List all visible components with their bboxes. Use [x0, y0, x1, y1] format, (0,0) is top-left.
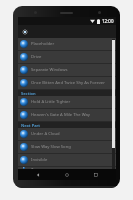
button[interactable]: Hold A Little Tighter [18, 96, 116, 108]
button[interactable]: Under A Cloud [18, 128, 116, 140]
button[interactable]: Home [58, 169, 76, 180]
staticText: Once Bitten And Twice Shy As Forever [31, 80, 105, 86]
staticText: Under A Cloud [31, 131, 60, 137]
button[interactable]: Once Bitten And Twice Shy As Forever [18, 77, 116, 89]
button[interactable]: Drive [18, 51, 116, 63]
button[interactable]: Menu [20, 27, 30, 37]
staticText: Invisible [31, 157, 48, 163]
button[interactable]: Slow Way Slow Song [18, 141, 116, 153]
staticText: Heaven's Gate A Mile The Way [31, 112, 90, 118]
button[interactable]: Invisible [18, 154, 116, 166]
button[interactable]: Recents [87, 169, 105, 180]
staticText: Tomorrow [31, 167, 52, 169]
button[interactable]: Tomorrow [18, 167, 116, 169]
staticText: Slow Way Slow Song [31, 144, 71, 150]
button[interactable]: Heaven's Gate A Mile The Way [18, 109, 116, 121]
staticText: Separate Windows [31, 67, 68, 73]
staticText: Drive [31, 54, 42, 60]
staticText: 12:00 [102, 18, 114, 24]
staticText: Hold A Little Tighter [31, 99, 71, 105]
staticText: Section [21, 91, 36, 96]
staticText: Placeholder [31, 41, 55, 47]
button[interactable]: Placeholder [18, 38, 116, 50]
button[interactable]: Separate Windows [18, 64, 116, 76]
button[interactable]: Back [29, 169, 47, 180]
staticText: Next Part [21, 123, 41, 128]
